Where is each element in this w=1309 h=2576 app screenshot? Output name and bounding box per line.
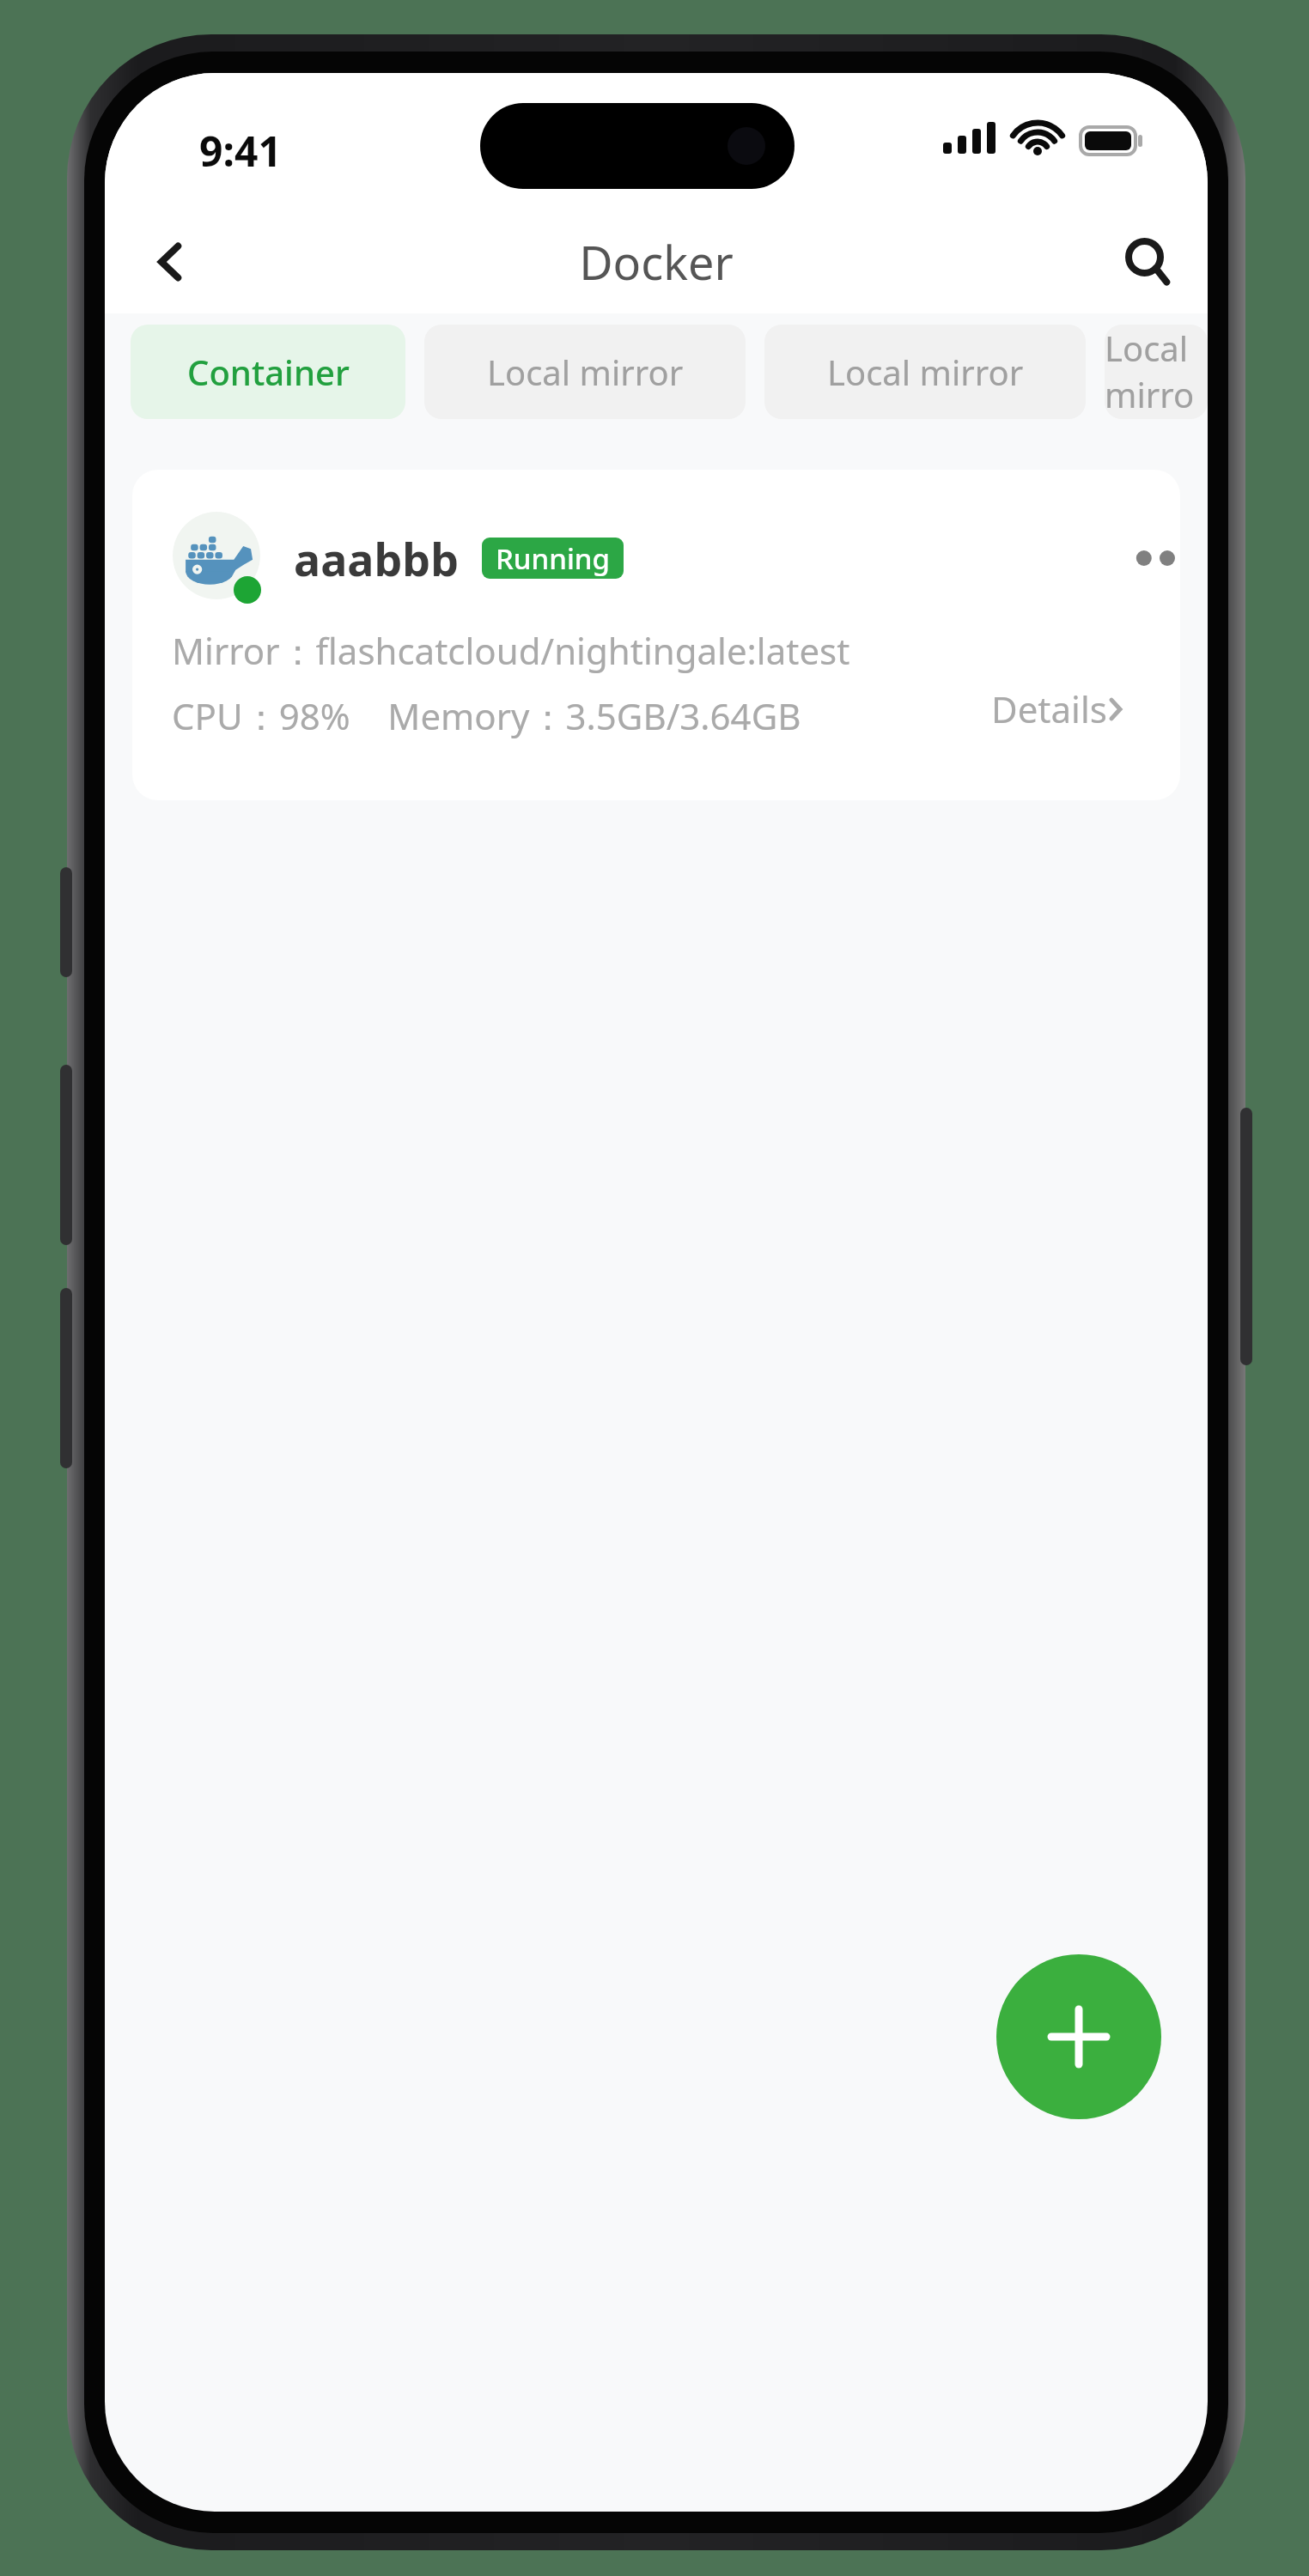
staticText: 9:41: [199, 123, 282, 179]
staticText: Details: [991, 684, 1107, 733]
button[interactable]: Container: [131, 325, 405, 419]
staticText: Running: [496, 539, 610, 578]
button[interactable]: Search: [1101, 215, 1196, 309]
staticText: CPU：98% Memory：3.5GB/3.64GB: [172, 691, 801, 740]
staticText: aaabbb: [294, 528, 460, 589]
button[interactable]: Add container: [996, 1954, 1161, 2119]
staticText: Mirror：flashcatcloud/nightingale:latest: [172, 626, 850, 675]
button[interactable]: Back: [124, 215, 218, 309]
button[interactable]: aaabbb: [132, 470, 1180, 800]
staticText: Local mirror: [827, 349, 1024, 395]
button[interactable]: Local mirror: [1105, 325, 1208, 419]
button[interactable]: More options: [1120, 511, 1180, 605]
staticText: Local mirror: [1105, 325, 1208, 419]
staticText: Local mirror: [487, 349, 684, 395]
staticText: Container: [187, 349, 350, 395]
button[interactable]: Details: [991, 684, 1124, 733]
button[interactable]: Local mirror: [764, 325, 1086, 419]
staticText: Docker: [105, 230, 1208, 294]
button[interactable]: Local mirror: [424, 325, 746, 419]
